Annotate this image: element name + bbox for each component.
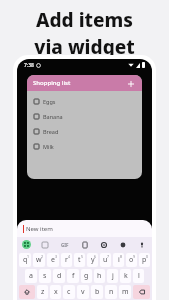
button[interactable]: v — [77, 285, 89, 299]
button[interactable]: d — [53, 269, 65, 283]
staticText: i — [118, 255, 120, 265]
staticText: 3 — [55, 254, 58, 259]
button[interactable]: GIF — [59, 240, 71, 250]
staticText: w — [36, 255, 42, 265]
staticText: n — [109, 287, 114, 297]
button[interactable]: b — [91, 285, 103, 299]
staticText: Bread — [43, 128, 59, 135]
staticText: 7:38 — [24, 62, 34, 69]
staticText: f — [72, 271, 75, 281]
button[interactable]: Banana — [27, 109, 142, 124]
staticText: o — [129, 255, 134, 265]
button[interactable]: Voice input — [137, 240, 147, 250]
button[interactable]: q — [19, 253, 31, 267]
button[interactable]: k — [120, 269, 131, 283]
button[interactable]: y — [87, 253, 98, 267]
button[interactable]: h — [94, 269, 105, 283]
button[interactable]: a — [25, 269, 37, 283]
button[interactable]: m — [119, 285, 131, 299]
staticText: p — [142, 255, 147, 265]
staticText: 5 — [81, 254, 84, 259]
button[interactable]: l — [133, 269, 144, 283]
staticText: 8 — [120, 254, 123, 259]
staticText: b — [95, 287, 100, 297]
button[interactable]: o — [126, 253, 137, 267]
staticText: d — [57, 271, 62, 281]
staticText: k — [124, 271, 128, 281]
button[interactable]: s — [39, 269, 51, 283]
staticText: via widget — [34, 34, 135, 60]
staticText: u — [103, 255, 108, 265]
staticText: Add items — [36, 7, 133, 33]
staticText: y — [91, 255, 95, 265]
button[interactable]: f — [67, 269, 79, 283]
button[interactable]: Google apps — [22, 240, 31, 249]
staticText: q — [23, 255, 28, 265]
staticText: e — [51, 255, 55, 265]
button[interactable]: Add item — [125, 78, 136, 89]
staticText: Shopping list — [33, 79, 71, 87]
staticText: r — [65, 255, 68, 265]
button[interactable]: n — [105, 285, 117, 299]
staticText: 2 — [41, 254, 44, 259]
button[interactable]: e — [47, 253, 59, 267]
staticText: Milk — [43, 143, 54, 150]
staticText: s — [43, 271, 47, 281]
button[interactable]: t — [74, 253, 85, 267]
staticText: z — [41, 287, 45, 297]
button[interactable]: Settings — [99, 240, 109, 250]
button[interactable]: p — [139, 253, 150, 267]
staticText: 7 — [107, 254, 110, 259]
staticText: Eggs — [43, 98, 56, 105]
staticText: c — [67, 287, 71, 297]
button[interactable]: Bread — [27, 124, 142, 139]
staticText: h — [97, 271, 102, 281]
button[interactable]: Shift — [19, 285, 35, 299]
button[interactable]: New item — [17, 220, 152, 237]
staticText: 1 — [27, 254, 30, 259]
button[interactable]: Eggs — [27, 94, 142, 109]
staticText: t — [78, 255, 81, 265]
staticText: 9 — [133, 254, 136, 259]
staticText: Banana — [43, 113, 63, 120]
button[interactable]: Backspace — [133, 285, 150, 299]
button[interactable]: w — [33, 253, 45, 267]
button[interactable]: Themes — [40, 240, 50, 250]
staticText: v — [81, 287, 85, 297]
button[interactable]: Stickers — [118, 240, 128, 250]
staticText: 6 — [94, 254, 97, 259]
staticText: 4 — [68, 254, 71, 259]
button[interactable]: j — [107, 269, 118, 283]
staticText: j — [112, 271, 114, 281]
button[interactable]: u — [100, 253, 111, 267]
button[interactable]: z — [37, 285, 48, 299]
button[interactable]: i — [113, 253, 124, 267]
staticText: 0 — [146, 254, 149, 259]
button[interactable]: x — [50, 285, 61, 299]
button[interactable]: Milk — [27, 139, 142, 154]
staticText: New item — [26, 225, 53, 233]
staticText: a — [29, 271, 33, 281]
staticText: x — [54, 287, 58, 297]
staticText: l — [138, 271, 140, 281]
staticText: GIF — [61, 242, 69, 248]
button[interactable]: r — [61, 253, 72, 267]
button[interactable]: Clipboard — [80, 240, 90, 250]
button[interactable]: Shopping list — [27, 75, 142, 91]
staticText: g — [84, 271, 89, 281]
button[interactable]: g — [81, 269, 92, 283]
button[interactable]: c — [63, 285, 75, 299]
staticText: m — [122, 287, 129, 297]
